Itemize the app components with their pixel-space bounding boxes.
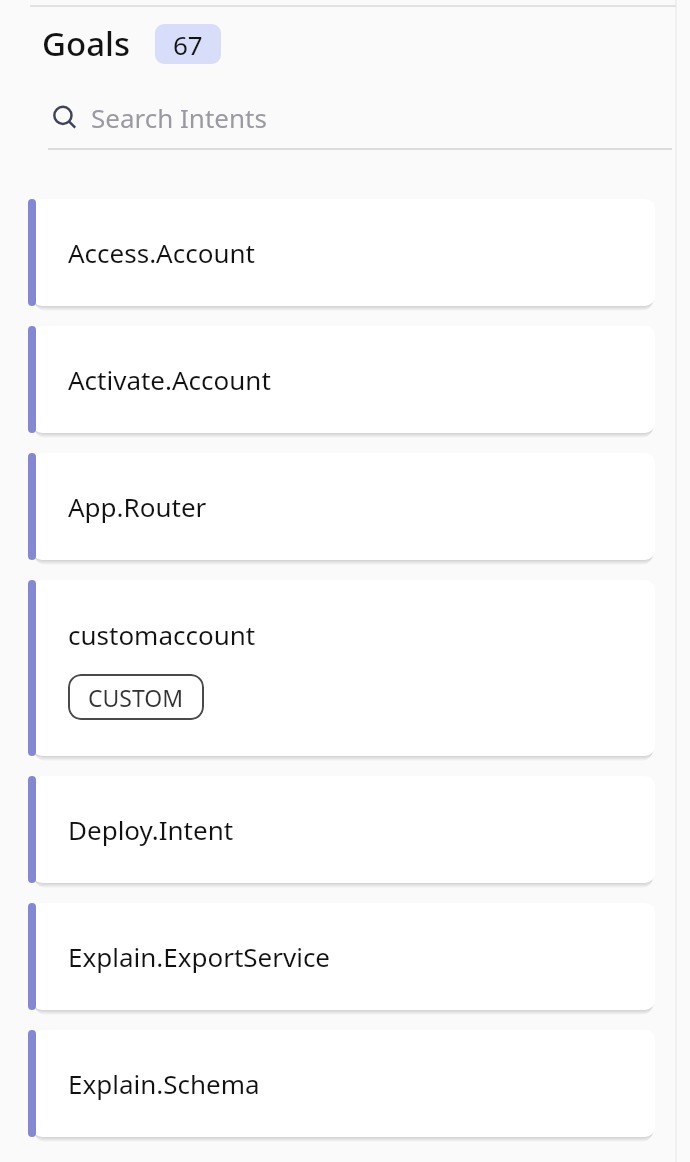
staticText: Explain.ExportService: [68, 939, 331, 974]
staticText: Search Intents: [91, 100, 267, 135]
staticText: App.Router: [68, 489, 207, 524]
staticText: Goals: [42, 21, 130, 66]
button[interactable]: Access.Account: [28, 199, 655, 306]
button[interactable]: App.Router: [28, 453, 655, 560]
button[interactable]: Explain.ExportService: [28, 903, 655, 1010]
button[interactable]: customaccount: [28, 580, 655, 756]
staticText: Deploy.Intent: [68, 812, 234, 847]
staticText: Activate.Account: [68, 362, 271, 397]
staticText: Access.Account: [68, 235, 255, 270]
button[interactable]: Deploy.Intent: [28, 776, 655, 883]
button[interactable]: Activate.Account: [28, 326, 655, 433]
button[interactable]: 67: [155, 24, 221, 64]
button[interactable]: Search: [48, 100, 672, 150]
staticText: Explain.Schema: [68, 1066, 260, 1101]
staticText: 67: [173, 27, 203, 62]
staticText: CUSTOM: [88, 682, 184, 713]
other: Search: [48, 101, 82, 135]
button[interactable]: Explain.Schema: [28, 1030, 655, 1137]
staticText: customaccount: [68, 617, 256, 652]
button[interactable]: CUSTOM: [68, 674, 204, 720]
